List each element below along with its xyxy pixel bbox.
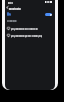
staticText: [TV] Samsung The Frame 55 <box>11 28 38 31</box>
button[interactable]: Back <box>5 5 9 10</box>
button[interactable]: [TV] Samsung QN90C Series (55) <box>7 33 55 37</box>
button[interactable]: [TV] Samsung The Frame 55 <box>7 26 55 30</box>
staticText: [TV] Samsung The Frame 55 <box>11 27 38 30</box>
staticText: On <box>7 13 11 17</box>
staticText: [TV] Samsung QN90C Series (55) <box>11 34 42 37</box>
staticText: Bluetooth <box>9 7 21 10</box>
staticText: Available <box>7 19 17 22</box>
staticText: On <box>7 12 11 16</box>
staticText: 9:41 <box>8 0 13 3</box>
staticText: Available <box>7 20 17 23</box>
staticText: 9:41 <box>8 1 13 4</box>
button[interactable]: On <box>7 12 52 16</box>
staticText: [TV] Samsung QN90C Series (55) <box>11 35 42 38</box>
staticText: Bluetooth <box>9 6 21 9</box>
